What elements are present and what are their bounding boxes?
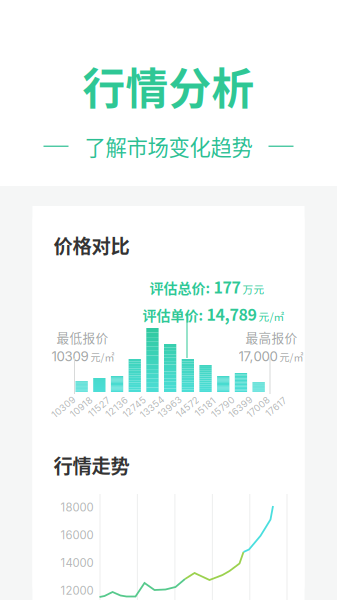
staticText: 最低报价 <box>56 328 108 346</box>
staticText: 15181 <box>193 401 217 413</box>
staticText: 17008 <box>245 401 272 413</box>
staticText: 16000 <box>60 528 93 542</box>
staticText: 17617 <box>264 401 288 413</box>
staticText: 10309 <box>50 401 78 413</box>
staticText: 了解市场变化趋势 <box>84 131 252 162</box>
staticText: 15790 <box>209 401 236 413</box>
staticText: 17,000 <box>238 348 277 364</box>
staticText: 最高报价 <box>245 328 297 346</box>
staticText: 13354 <box>138 401 166 413</box>
staticText: 14,789 <box>206 302 256 325</box>
staticText: 行情走势 <box>53 451 129 479</box>
staticText: 12745 <box>121 401 148 413</box>
staticText: 177 <box>213 275 240 298</box>
staticText: 评估单价: <box>142 304 206 325</box>
staticText: 16399 <box>227 401 255 413</box>
staticText: 13963 <box>156 401 184 413</box>
staticText: 万元 <box>240 281 264 297</box>
staticText: 元/㎡ <box>256 308 284 324</box>
staticText: 18000 <box>60 501 93 514</box>
staticText: 10918 <box>68 401 94 413</box>
staticText: 元/㎡ <box>90 350 114 364</box>
staticText: 行情分析 <box>82 55 254 117</box>
staticText: 14572 <box>174 401 201 413</box>
staticText: 评估总价: <box>149 277 213 298</box>
staticText: 价格对比 <box>53 231 129 259</box>
staticText: 12136 <box>104 401 130 413</box>
staticText: 14000 <box>60 556 93 570</box>
staticText: 11527 <box>87 401 112 413</box>
staticText: 10309 <box>51 348 88 364</box>
staticText: 元/㎡ <box>279 350 303 364</box>
staticText: 12000 <box>60 584 93 597</box>
